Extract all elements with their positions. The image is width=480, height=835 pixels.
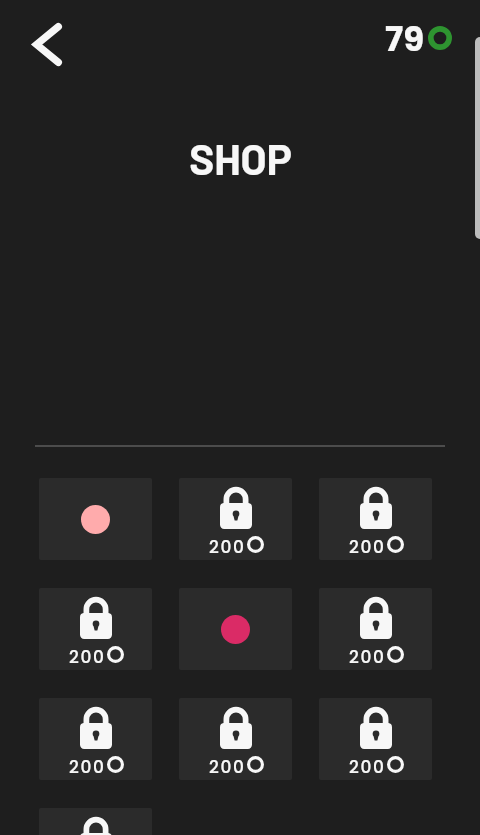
button[interactable] — [179, 588, 292, 670]
staticText: 200 — [209, 755, 246, 779]
staticText: 200 — [349, 645, 386, 669]
button[interactable]: 200 — [319, 588, 432, 670]
button[interactable]: 200 — [39, 808, 152, 835]
button[interactable]: Back — [16, 10, 78, 78]
staticText: SHOP — [189, 133, 292, 183]
button[interactable]: 200 — [179, 478, 292, 560]
staticText: 200 — [69, 645, 106, 669]
button[interactable]: 200 — [39, 588, 152, 670]
button[interactable]: 200 — [179, 698, 292, 780]
button[interactable]: 200 — [319, 478, 432, 560]
staticText: 200 — [209, 535, 246, 559]
button[interactable] — [39, 478, 152, 560]
button[interactable]: 200 — [319, 698, 432, 780]
button[interactable]: 200 — [39, 698, 152, 780]
staticText: 200 — [69, 755, 106, 779]
staticText: 200 — [349, 755, 386, 779]
button[interactable]: 79 — [385, 15, 452, 63]
staticText: 79 — [385, 15, 425, 63]
staticText: 200 — [349, 535, 386, 559]
